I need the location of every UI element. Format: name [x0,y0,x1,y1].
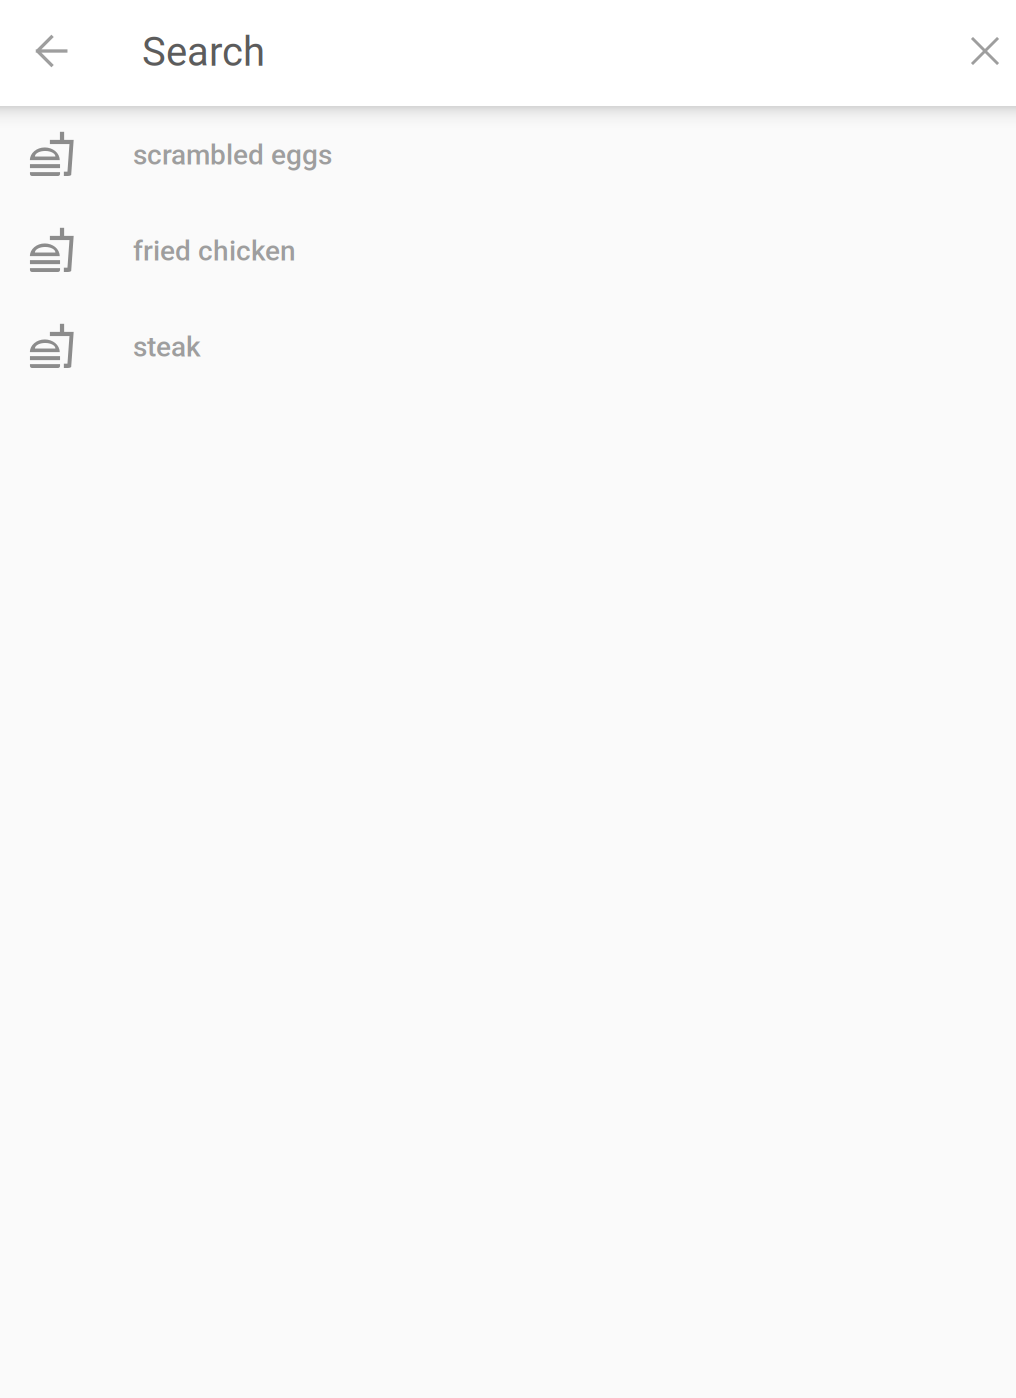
button[interactable]: steak [0,298,1016,394]
staticText: steak [133,331,201,363]
staticText: Search [142,29,265,75]
staticText: scrambled eggs [133,139,332,171]
button[interactable]: fried chicken [0,202,1016,298]
button[interactable]: Clear search [952,0,1016,106]
button[interactable]: scrambled eggs [0,106,1016,202]
staticText: fried chicken [133,235,296,267]
button[interactable]: Back [0,0,106,106]
